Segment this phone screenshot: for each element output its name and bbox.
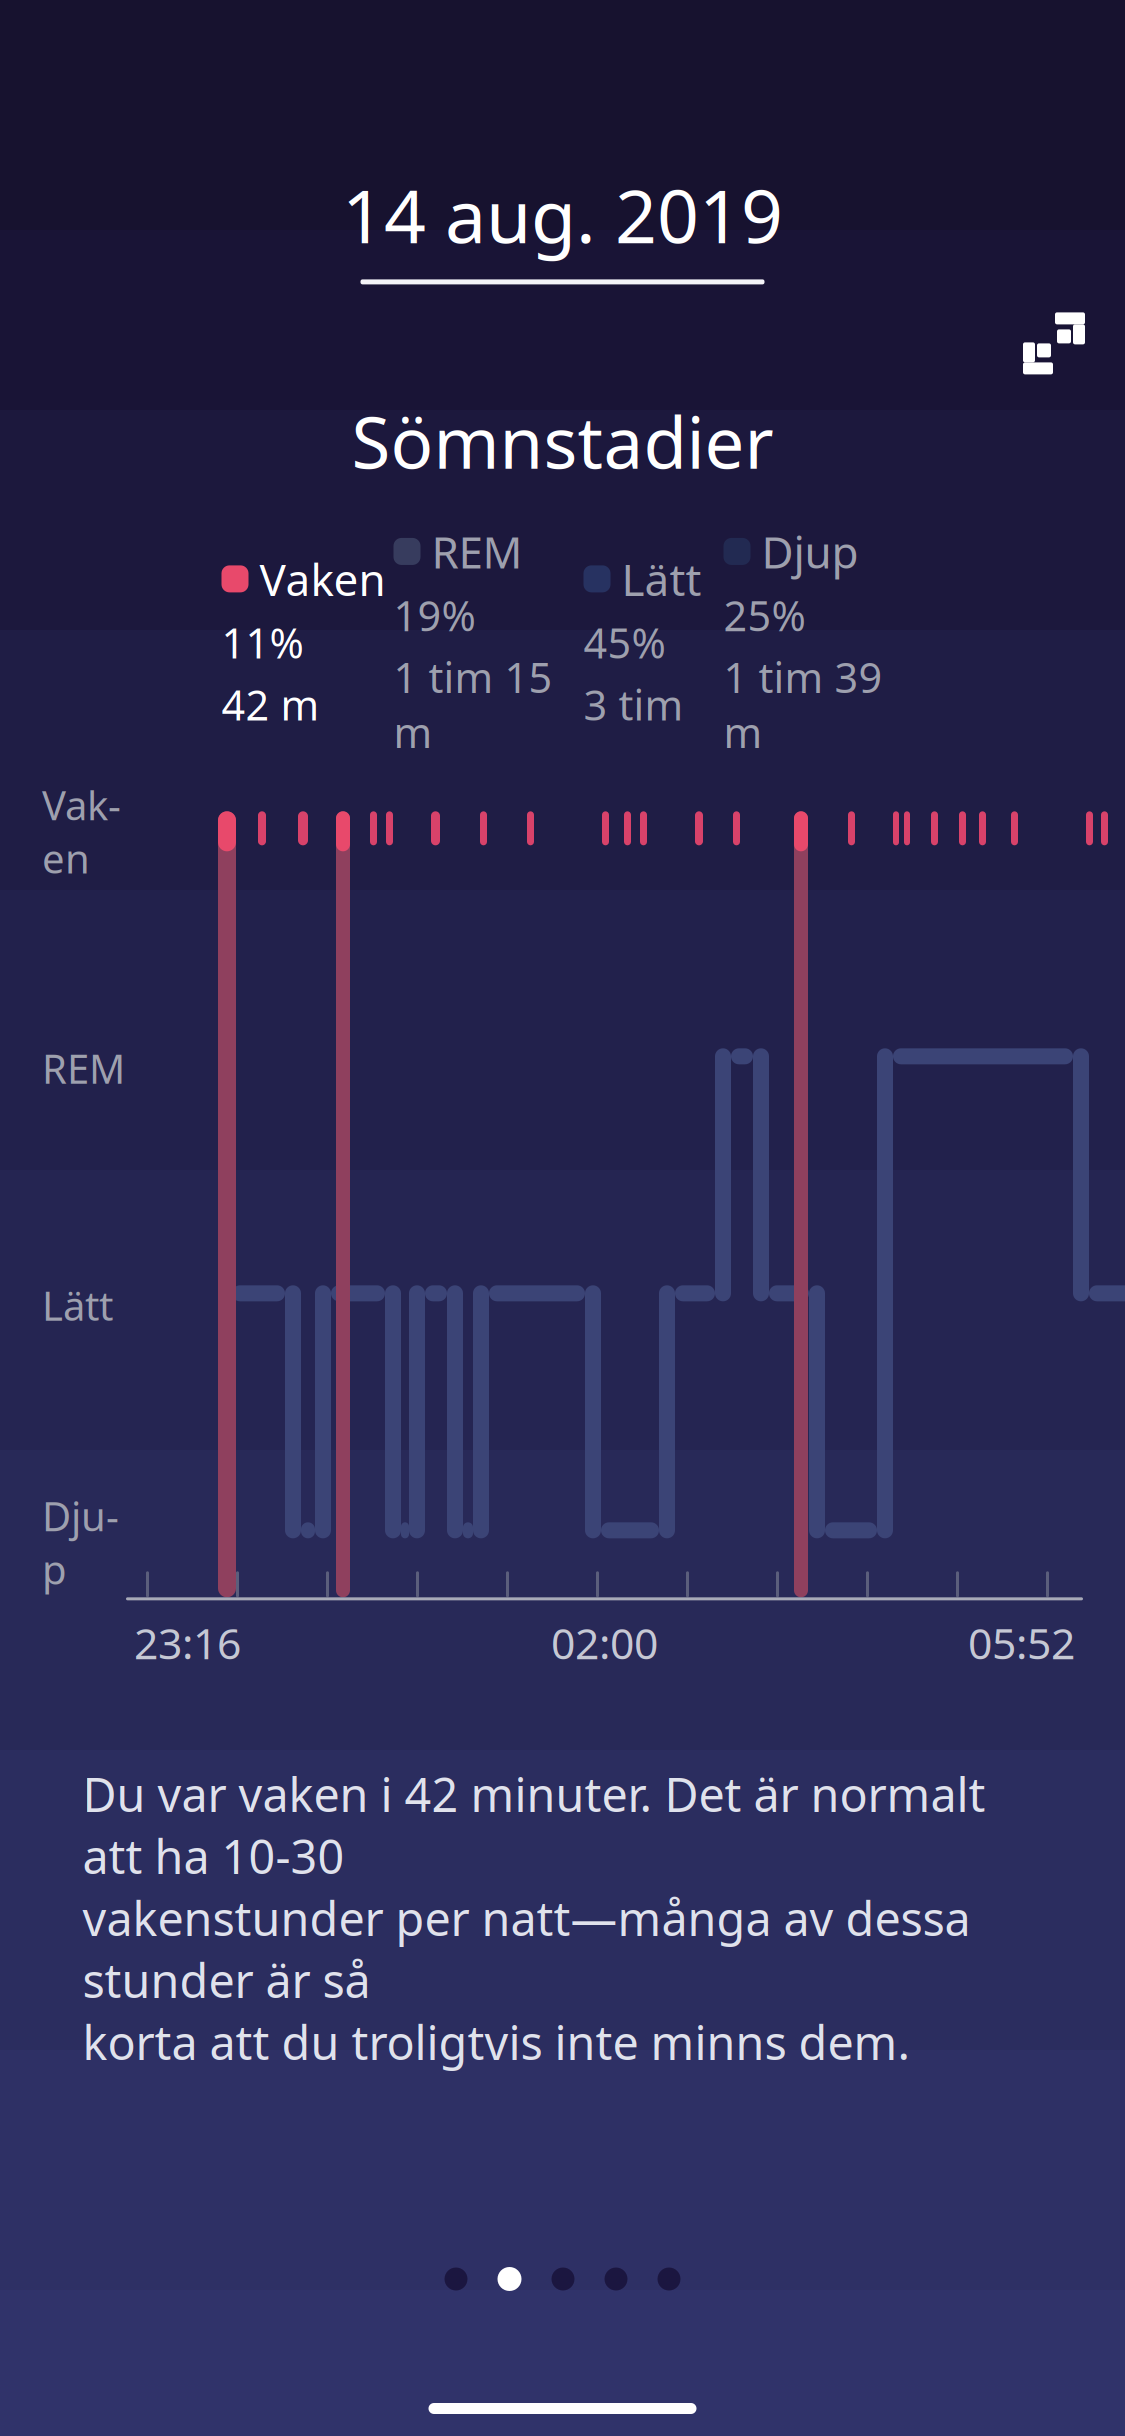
staticText: 25%	[723, 588, 805, 643]
staticText: Vaken	[42, 778, 121, 884]
staticText: Djup	[761, 522, 858, 581]
staticText: 11%	[221, 615, 303, 670]
staticText: vakenstunder per natt—många av dessa stu…	[82, 1887, 970, 2011]
staticText: korta att du troligtvis inte minns dem.	[82, 2011, 910, 2073]
button[interactable]: Djup	[723, 522, 915, 759]
staticText: Du var vaken i 42 minuter. Det är normal…	[82, 1763, 985, 1887]
staticText: Lätt	[621, 550, 701, 608]
button[interactable]: Lätt	[583, 550, 723, 732]
staticText: 1 tim 15 m	[393, 649, 552, 759]
staticText: 05:52	[968, 1614, 1075, 1671]
staticText: Djup	[42, 1489, 119, 1595]
staticText: REM	[431, 522, 522, 581]
staticText: 14 aug. 2019	[342, 166, 783, 263]
staticText: REM	[42, 1042, 125, 1095]
staticText: 19%	[393, 588, 475, 643]
staticText: 1 tim 39 m	[723, 649, 882, 759]
staticText: 45%	[583, 615, 665, 670]
staticText: 3 tim	[583, 677, 683, 732]
button[interactable]: Dra samman	[1005, 294, 1103, 392]
staticText: Vaken	[259, 550, 385, 608]
button[interactable]: 14 aug. 2019	[342, 166, 783, 284]
staticText: Lätt	[42, 1279, 113, 1332]
button[interactable]: REM	[393, 522, 583, 759]
staticText: 42 m	[221, 677, 319, 732]
button[interactable]: Vaken	[221, 550, 393, 732]
staticText: 02:00	[551, 1614, 658, 1671]
staticText: Sömnstadier	[351, 394, 773, 488]
staticText: 23:16	[134, 1614, 241, 1671]
